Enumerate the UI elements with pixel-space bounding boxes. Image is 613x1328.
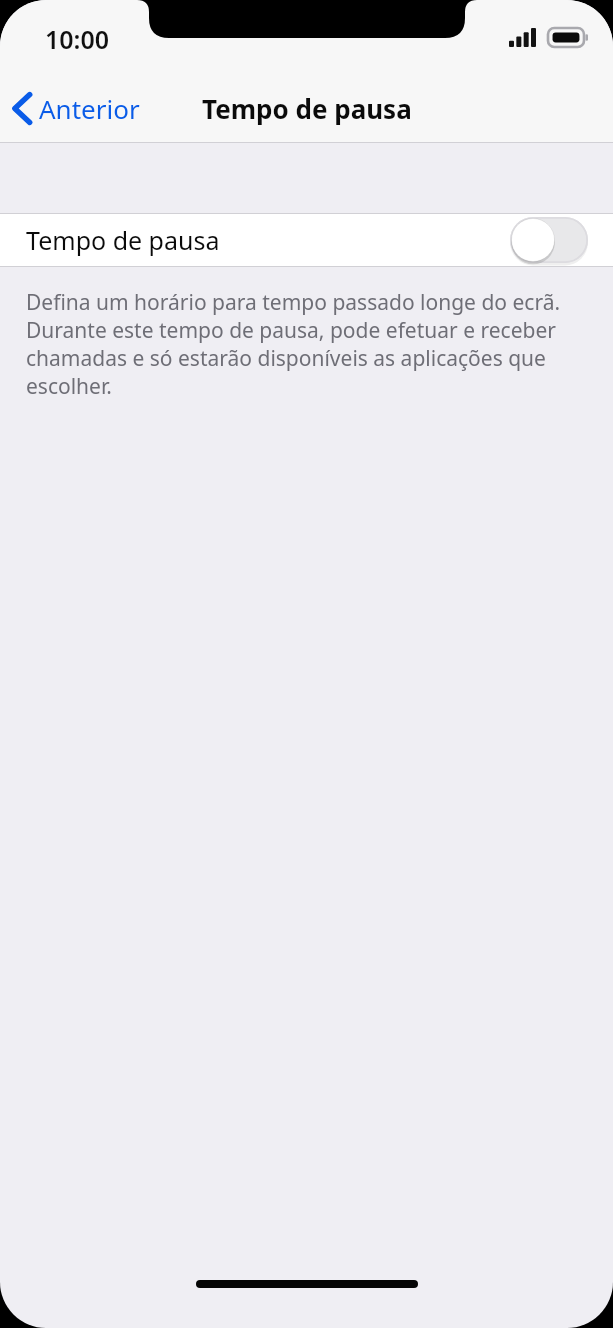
staticText: Defina um horário para tempo passado lon…: [26, 288, 583, 400]
button[interactable]: Tempo de pausa: [0, 213, 613, 267]
staticText: Tempo de pausa: [202, 91, 412, 126]
button[interactable]: Ativar Tempo de pausa: [510, 217, 588, 263]
button[interactable]: Anterior: [0, 82, 152, 135]
staticText: 10:00: [45, 22, 110, 56]
staticText: Tempo de pausa: [26, 223, 220, 257]
staticText: Anterior: [39, 91, 140, 126]
